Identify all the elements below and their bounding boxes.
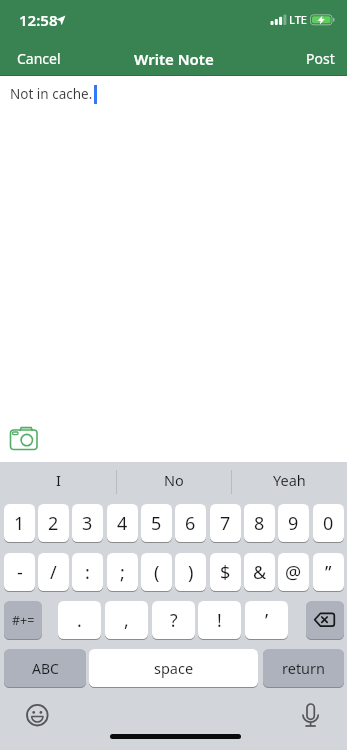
staticText: Yeah [273, 470, 306, 490]
staticText: ? [170, 608, 178, 632]
staticText: & [253, 560, 267, 585]
staticText: Write Note [134, 49, 214, 69]
staticText: I [56, 470, 61, 490]
staticText: 8 [254, 511, 265, 536]
staticText: 6 [185, 511, 196, 536]
staticText: ) [188, 560, 194, 585]
staticText: / [50, 560, 57, 585]
staticText: 1 [14, 511, 25, 536]
staticText: 3 [82, 511, 93, 536]
staticText: . [77, 608, 82, 632]
staticText: ; [120, 560, 125, 585]
staticText: : [85, 560, 90, 585]
staticText: return [282, 658, 326, 678]
staticText: ABC [32, 659, 59, 678]
staticText: 4 [117, 511, 128, 536]
staticText: 12:58 [19, 10, 58, 30]
staticText: @ [285, 560, 302, 585]
staticText: ’ [265, 608, 269, 632]
staticText: space [154, 658, 194, 678]
staticText: ! [217, 608, 222, 632]
staticText: ( [154, 560, 160, 585]
staticText: $ [220, 560, 231, 585]
staticText: 9 [288, 511, 299, 536]
staticText: 0 [323, 511, 334, 536]
staticText: , [124, 608, 129, 632]
staticText: - [17, 560, 23, 585]
staticText: 7 [220, 511, 231, 536]
staticText: #+= [12, 612, 35, 629]
staticText: No [164, 470, 184, 490]
staticText: 5 [151, 511, 162, 536]
staticText: Cancel [17, 49, 61, 68]
staticText: Post [306, 49, 335, 68]
staticText: LTE [289, 12, 307, 27]
staticText: 2 [48, 511, 59, 536]
staticText: ” [325, 560, 332, 585]
staticText: Not in cache. [10, 85, 93, 103]
